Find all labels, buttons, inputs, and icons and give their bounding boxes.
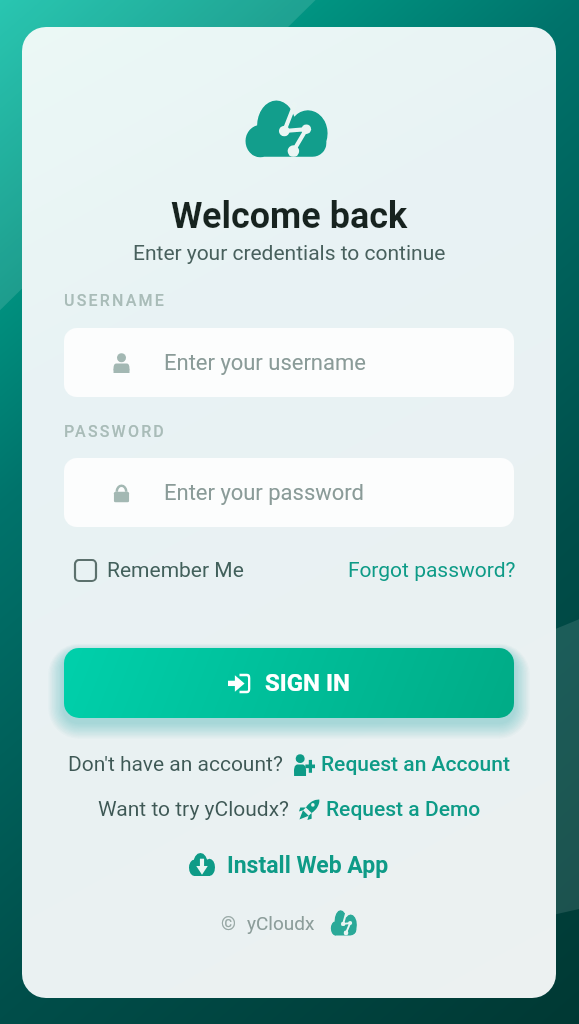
staticText: PASSWORD: [64, 422, 166, 441]
button[interactable]: SIGN IN: [64, 648, 514, 718]
staticText: Request an Account: [321, 752, 510, 777]
button[interactable]: Forgot password?: [348, 558, 516, 583]
staticText: Install Web App: [227, 852, 389, 879]
button[interactable]: Request a Demo: [299, 797, 481, 822]
button[interactable]: Enter your username: [64, 328, 514, 397]
button[interactable]: Remember Me: [75, 558, 244, 583]
staticText: ©: [221, 912, 236, 934]
button[interactable]: Enter your password: [64, 458, 514, 527]
staticText: Want to try yCloudx?: [98, 797, 290, 822]
staticText: USERNAME: [64, 291, 166, 310]
staticText: Enter your password: [164, 480, 365, 506]
staticText: Don't have an account?: [68, 752, 283, 777]
staticText: Enter your username: [164, 350, 366, 376]
staticText: SIGN IN: [265, 669, 351, 697]
staticText: Forgot password?: [348, 558, 516, 583]
staticText: Enter your credentials to continue: [133, 241, 446, 266]
button[interactable]: Install Web App: [189, 852, 389, 879]
staticText: yCloudx: [247, 912, 315, 934]
staticText: Welcome back: [171, 195, 408, 237]
button[interactable]: Request an Account: [292, 752, 510, 777]
staticText: Remember Me: [107, 558, 244, 583]
staticText: Request a Demo: [326, 797, 481, 822]
